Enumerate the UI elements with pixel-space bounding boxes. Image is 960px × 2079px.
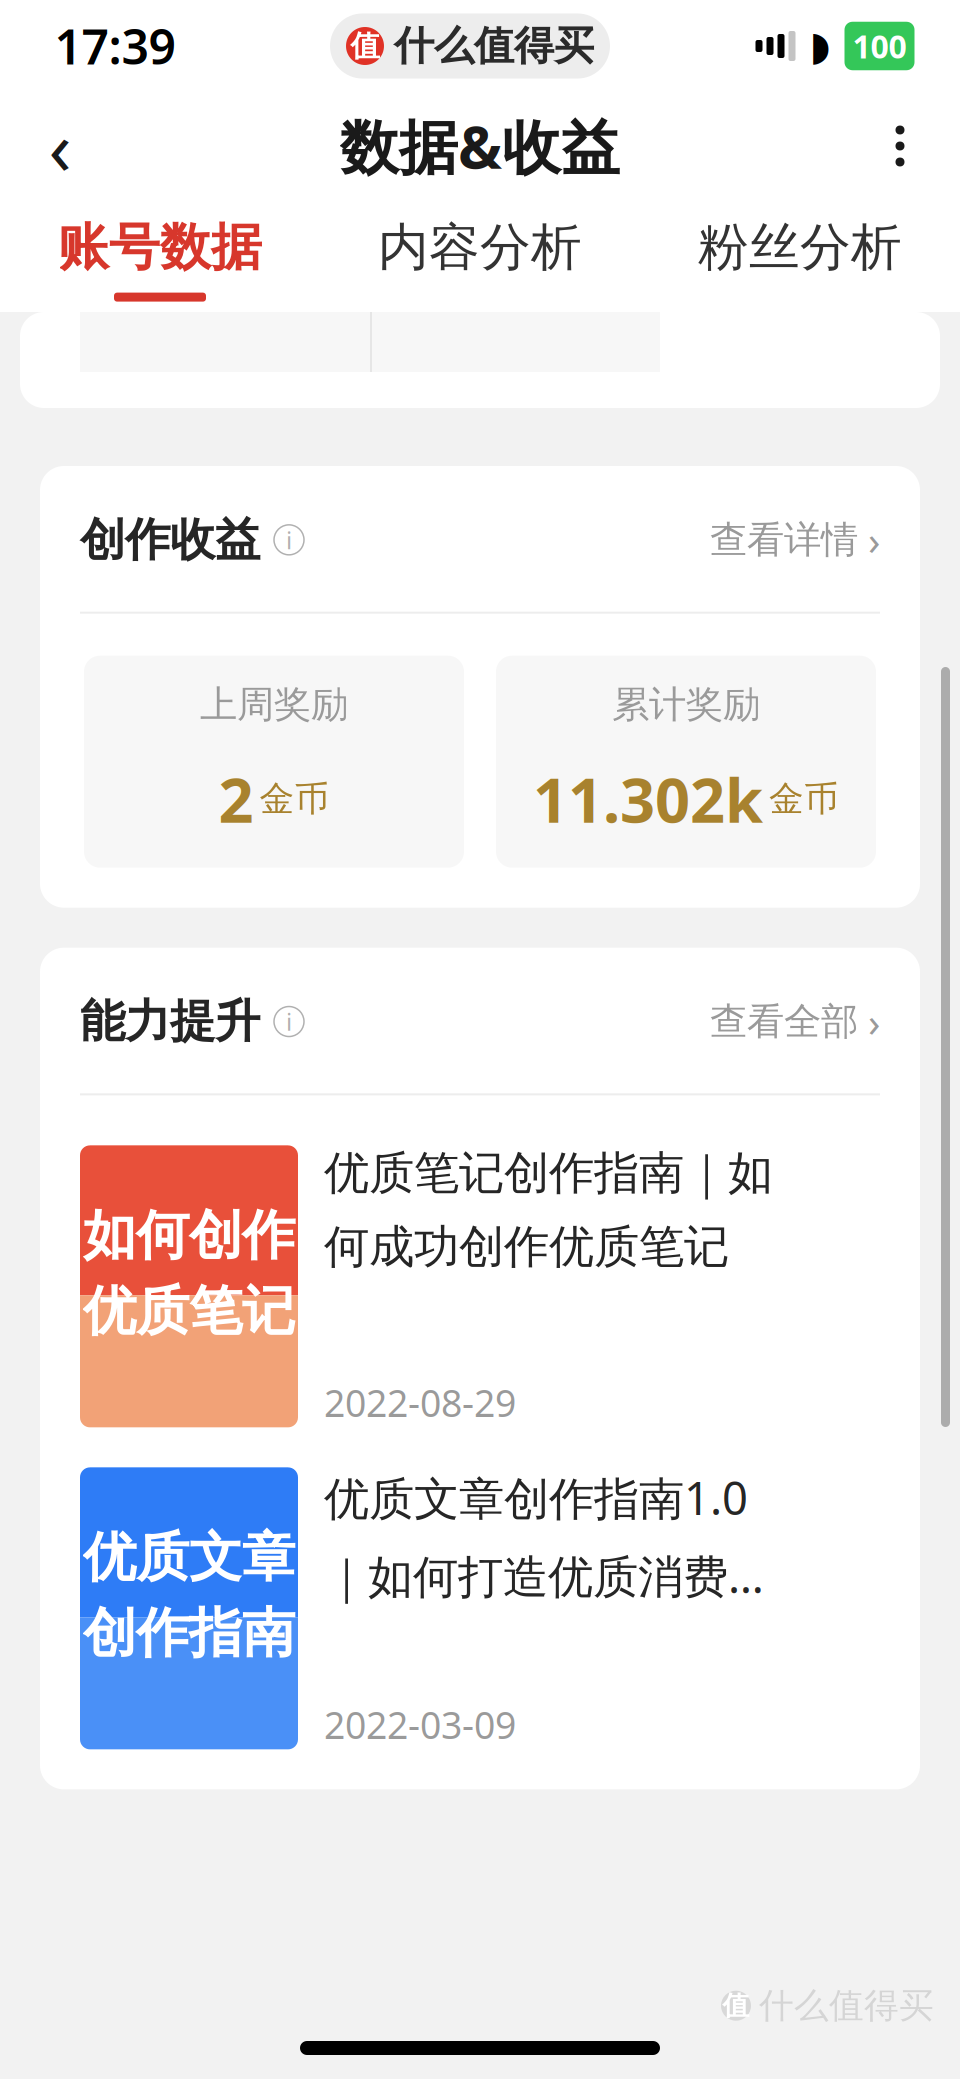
staticText: 优质文章创作指南1.0 xyxy=(324,1467,748,1528)
staticText: › xyxy=(868,513,880,566)
staticText: 值 xyxy=(350,28,379,64)
staticText: 能力提升 xyxy=(80,994,260,1049)
staticText: 11.302k xyxy=(533,758,763,840)
staticText: 何成功创作优质笔记 xyxy=(324,1219,729,1275)
staticText: 数据&收益 xyxy=(340,107,620,185)
staticText: 2022-03-09 xyxy=(324,1700,516,1749)
staticText: i xyxy=(286,524,292,556)
staticText: 100 xyxy=(852,25,906,67)
staticText: 金币 xyxy=(769,778,839,820)
staticText: 创作指南 xyxy=(83,1600,295,1666)
staticText: 2 xyxy=(218,758,253,840)
staticText: 优质文章 xyxy=(83,1525,295,1590)
staticText: i xyxy=(286,1006,292,1037)
button[interactable]: More options xyxy=(840,96,960,196)
staticText: 内容分析 xyxy=(378,216,582,279)
button[interactable]: 查看详情 xyxy=(710,513,880,566)
staticText: 优质笔记 xyxy=(83,1278,295,1344)
staticText: › xyxy=(868,995,880,1048)
staticText: ◗ xyxy=(809,23,830,69)
staticText: 创作收益 xyxy=(80,512,260,568)
button[interactable]: 查看全部 xyxy=(710,995,880,1048)
button[interactable]: 如何创作 xyxy=(80,1145,880,1427)
staticText: 账号数据 xyxy=(58,216,262,279)
staticText: 什么值得买 xyxy=(759,1984,934,2027)
staticText: 金币 xyxy=(259,778,329,820)
button[interactable]: 粉丝分析 xyxy=(640,200,960,312)
staticText: 上周奖励 xyxy=(200,682,348,728)
staticText: 17:39 xyxy=(54,14,175,78)
staticText: 粉丝分析 xyxy=(698,216,902,279)
staticText: 累计奖励 xyxy=(612,682,760,728)
button[interactable]: 账号数据 xyxy=(0,200,320,312)
staticText: ｜如何打造优质消费… xyxy=(324,1546,764,1606)
button[interactable]: Back xyxy=(0,96,120,196)
staticText: 什么值得买 xyxy=(394,21,594,70)
staticText: 2022-08-29 xyxy=(324,1378,516,1427)
staticText: 查看全部 xyxy=(710,999,858,1044)
staticText: 查看详情 xyxy=(710,517,858,563)
staticText: 优质笔记创作指南｜如 xyxy=(324,1145,773,1201)
button[interactable]: 优质文章 xyxy=(80,1467,880,1749)
staticText: 如何创作 xyxy=(83,1203,295,1268)
staticText: 值 xyxy=(722,1989,749,2022)
button[interactable]: 内容分析 xyxy=(320,200,640,312)
staticText: ‹ xyxy=(48,96,71,196)
